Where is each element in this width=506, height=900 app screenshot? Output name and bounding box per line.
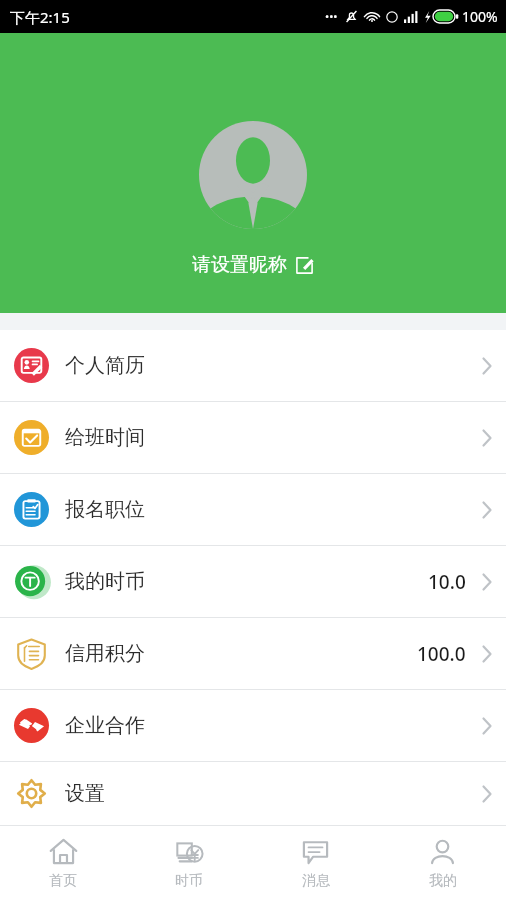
staticText: 给班时间	[65, 425, 145, 450]
button[interactable]: 我的时币	[0, 546, 506, 617]
staticText: 企业合作	[65, 713, 145, 738]
button[interactable]: Profile avatar	[199, 121, 307, 229]
button[interactable]: 给班时间	[0, 402, 506, 473]
staticText: 首页	[49, 872, 77, 890]
staticText: 消息	[302, 872, 330, 890]
button[interactable]: 个人简历	[0, 330, 506, 401]
staticText: 10.0	[428, 569, 466, 595]
staticText: 报名职位	[65, 497, 145, 522]
staticText: 设置	[65, 781, 105, 806]
staticText: 100%	[462, 7, 498, 26]
button[interactable]: 时币	[126, 826, 252, 900]
staticText: •••	[325, 9, 338, 24]
button[interactable]: 首页	[0, 826, 126, 900]
staticText: 个人简历	[65, 353, 145, 378]
button[interactable]: 我的	[379, 826, 506, 900]
button[interactable]: 请设置昵称	[180, 249, 326, 281]
staticText: 我的	[429, 872, 457, 890]
staticText: 信用积分	[65, 641, 145, 666]
button[interactable]: 信用积分	[0, 618, 506, 689]
staticText: 100.0	[417, 641, 466, 667]
staticText: 我的时币	[65, 569, 145, 594]
staticText: 下午2:15	[10, 7, 70, 27]
button[interactable]: 企业合作	[0, 690, 506, 761]
button[interactable]: 报名职位	[0, 474, 506, 545]
staticText: 时币	[175, 872, 203, 890]
staticText: 请设置昵称	[192, 253, 287, 277]
button[interactable]: 消息	[252, 826, 379, 900]
button[interactable]: 设置	[0, 762, 506, 825]
